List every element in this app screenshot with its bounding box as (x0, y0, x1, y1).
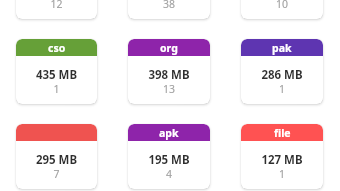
staticText: cso (48, 41, 66, 55)
button[interactable]: cso 435 MB, 1 files (16, 39, 97, 104)
staticText: 13 (128, 82, 210, 96)
staticText: 38 (128, 0, 210, 11)
button[interactable]: jpg 640 MB, 10 files (241, 0, 323, 19)
button[interactable]: zip 1.2 GB, 12 files (16, 0, 97, 19)
button[interactable]: 295 MB, 7 files (16, 124, 97, 189)
staticText: 195 MB (128, 152, 210, 168)
staticText: 1 (16, 82, 97, 96)
staticText: pak (272, 41, 292, 55)
staticText: 398 MB (128, 67, 210, 83)
staticText: 12 (16, 0, 97, 11)
staticText: 286 MB (241, 67, 323, 83)
button[interactable]: pak 286 MB, 1 files (241, 39, 323, 104)
staticText: 10 (241, 0, 323, 11)
button[interactable]: org 398 MB, 13 files (128, 39, 210, 104)
staticText: 4 (128, 167, 210, 181)
staticText: org (160, 41, 178, 55)
staticText: 295 MB (16, 152, 97, 168)
staticText: file (274, 126, 291, 140)
staticText: 1 (241, 167, 323, 181)
staticText: 7 (16, 167, 97, 181)
staticText: apk (159, 126, 179, 140)
staticText: 1 (241, 82, 323, 96)
button[interactable]: apk 195 MB, 4 files (128, 124, 210, 189)
staticText: 435 MB (16, 67, 97, 83)
button[interactable]: mp3 820 MB, 38 files (128, 0, 210, 19)
staticText: 127 MB (241, 152, 323, 168)
button[interactable]: file 127 MB, 1 files (241, 124, 323, 189)
